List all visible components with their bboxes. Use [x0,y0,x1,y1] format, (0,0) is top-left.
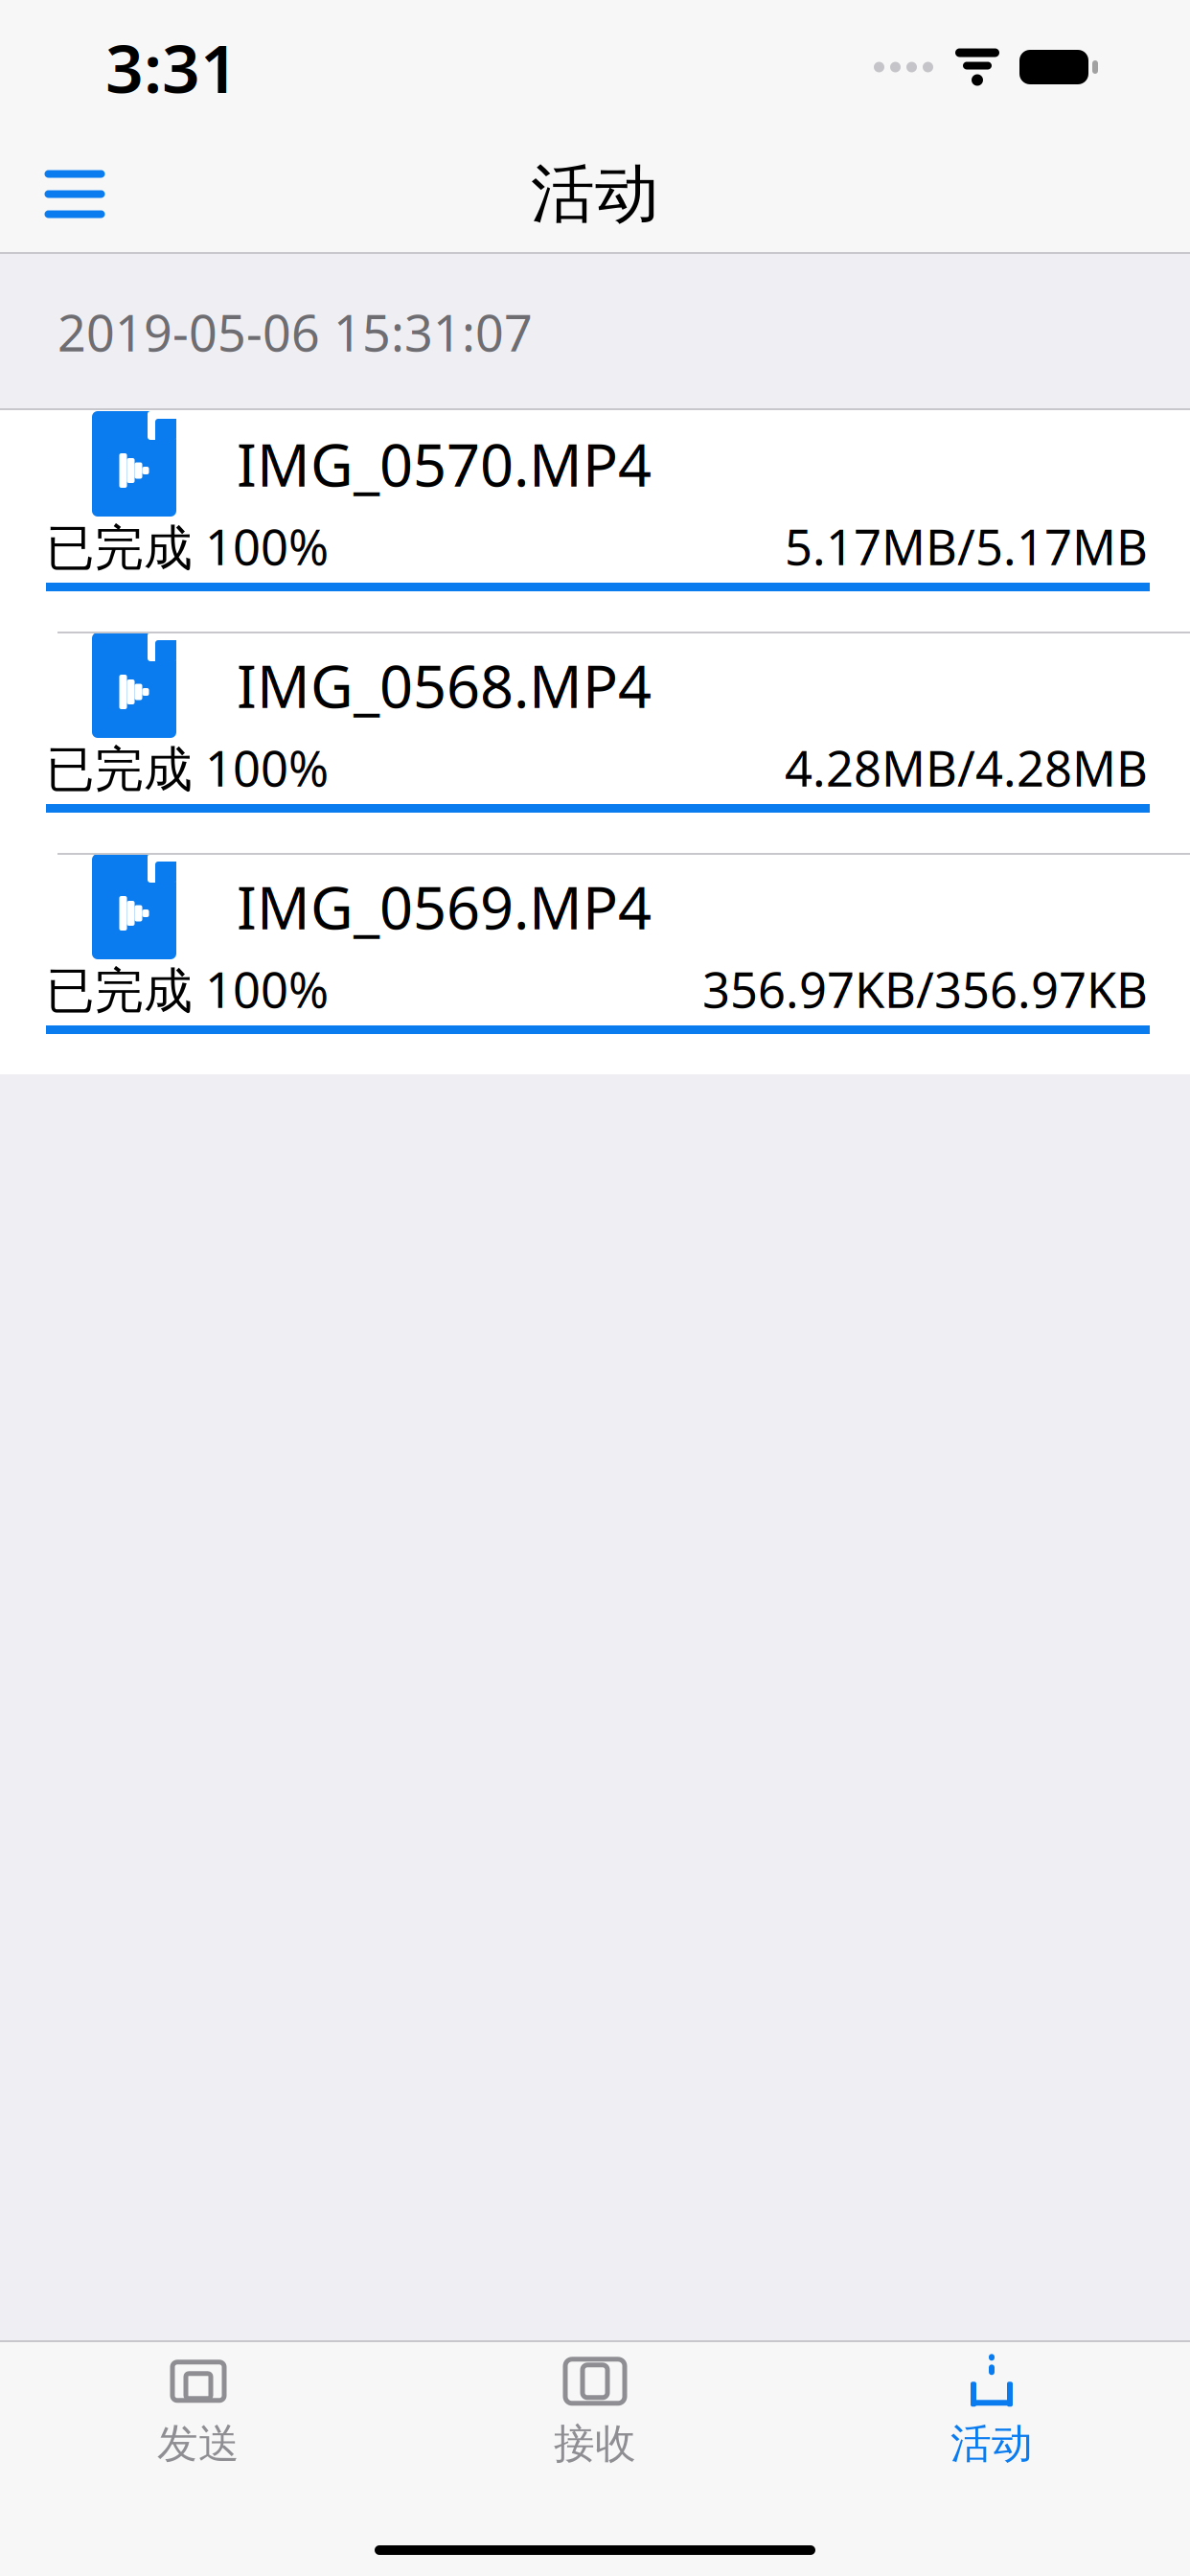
staticText: 活动 [950,2419,1033,2469]
staticText: 已完成 100% [46,957,329,1021]
staticText: 发送 [157,2419,240,2469]
button[interactable]: 活动 [793,2342,1190,2478]
staticText: 已完成 100% [46,514,329,579]
staticText: 活动 [531,155,659,233]
staticText: IMG_0568.MP4 [237,646,652,724]
staticText: 5.17MB/5.17MB [785,514,1148,579]
staticText: IMG_0569.MP4 [237,868,652,946]
button[interactable]: 接收 [397,2342,793,2478]
button[interactable]: 发送 [0,2342,397,2478]
staticText: 356.97KB/356.97KB [702,957,1148,1021]
staticText: 3:31 [105,23,239,111]
staticText: IMG_0570.MP4 [237,425,652,503]
staticText: 接收 [554,2419,636,2469]
staticText: 已完成 100% [46,735,329,800]
button[interactable]: IMG_0569.MP4 [0,853,1190,1074]
button[interactable]: IMG_0568.MP4 [0,632,1190,853]
button[interactable]: IMG_0570.MP4 [0,410,1190,632]
button[interactable]: Menu [17,146,132,242]
staticText: 2019-05-06 15:31:07 [57,299,533,365]
staticText: 4.28MB/4.28MB [785,735,1148,800]
